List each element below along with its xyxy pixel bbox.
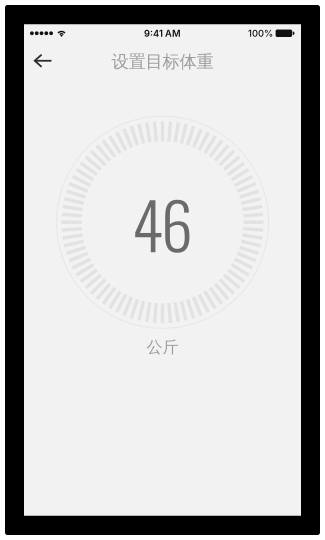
staticText: 9:41 AM (144, 28, 181, 39)
staticText: 46 (132, 176, 193, 271)
staticText: 设置目标体重 (111, 51, 213, 72)
staticText: 公斤 (146, 337, 178, 357)
staticText: 100% (248, 28, 273, 39)
button[interactable]: Back (24, 46, 52, 75)
